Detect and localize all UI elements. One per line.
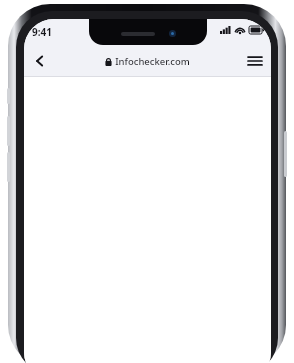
button[interactable]: Back xyxy=(28,49,52,73)
button[interactable]: Menu xyxy=(243,49,267,73)
staticText: 9:41 xyxy=(32,25,52,39)
staticText: Infochecker.com xyxy=(115,55,190,68)
button[interactable]: Infochecker.com xyxy=(105,55,190,68)
